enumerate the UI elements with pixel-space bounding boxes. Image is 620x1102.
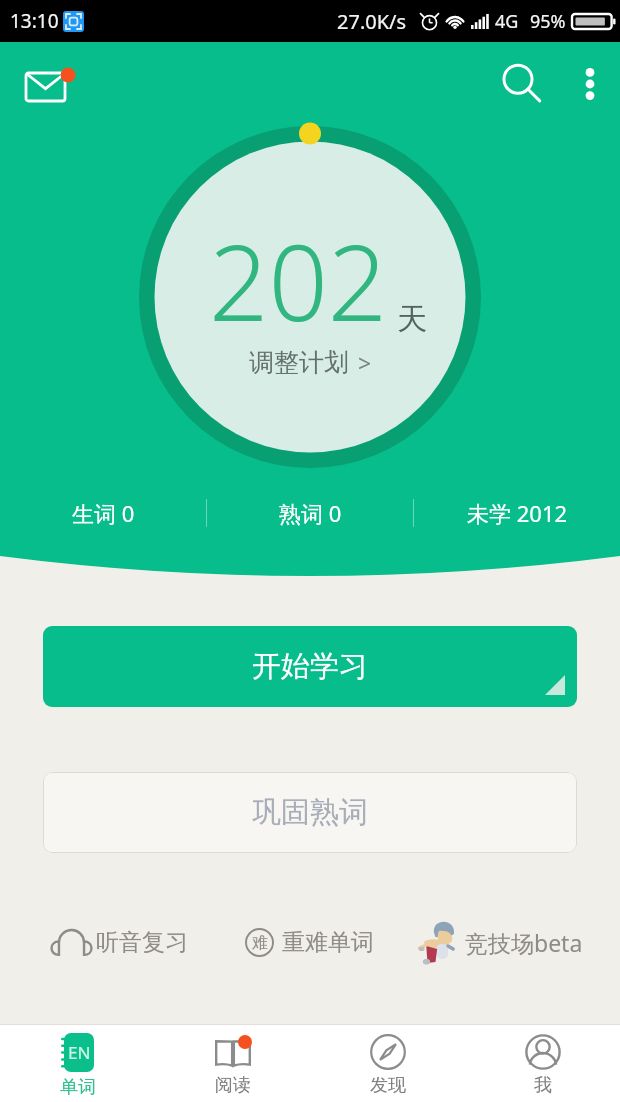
button[interactable]: 阅读 <box>155 1024 310 1102</box>
staticText: > <box>358 347 372 378</box>
button[interactable]: 未学 2012 <box>414 492 620 534</box>
staticText: 4G <box>495 9 519 34</box>
button[interactable]: 我 <box>465 1024 620 1102</box>
staticText: EN <box>68 1041 91 1064</box>
button[interactable]: 发现 <box>310 1024 465 1102</box>
staticText: 发现 <box>370 1074 406 1097</box>
staticText: 生词 0 <box>72 498 135 528</box>
staticText: 202 <box>209 210 388 352</box>
button[interactable]: Messages <box>18 56 74 112</box>
button[interactable]: More options <box>564 58 616 110</box>
button[interactable]: 巩固熟词 <box>43 772 577 853</box>
button[interactable]: 听音复习 <box>0 914 206 970</box>
button[interactable]: 开始学习 <box>43 626 577 707</box>
staticText: 竞技场beta <box>465 927 583 958</box>
staticText: 听音复习 <box>96 928 188 957</box>
staticText: 我 <box>534 1074 552 1097</box>
button[interactable]: 竞技场beta <box>413 914 620 970</box>
staticText: 重难单词 <box>282 928 374 957</box>
staticText: 阅读 <box>215 1074 251 1097</box>
staticText: 天 <box>397 300 427 338</box>
button[interactable]: 生词 0 <box>0 492 206 534</box>
staticText: 13:10 <box>10 8 59 34</box>
button[interactable]: Search <box>504 54 564 114</box>
button[interactable]: 熟词 0 <box>207 492 413 534</box>
staticText: 95% <box>530 9 566 34</box>
button[interactable]: 调整计划 <box>243 344 378 381</box>
button[interactable]: EN <box>0 1024 155 1102</box>
staticText: 开始学习 <box>252 648 368 685</box>
staticText: 27.0K/s <box>337 8 407 35</box>
button[interactable]: 难 <box>206 914 413 970</box>
staticText: 单词 <box>60 1076 96 1099</box>
staticText: 未学 2012 <box>467 498 568 528</box>
staticText: 调整计划 <box>249 347 349 378</box>
staticText: 难 <box>252 933 268 953</box>
staticText: 熟词 0 <box>279 498 342 528</box>
staticText: 巩固熟词 <box>252 794 368 831</box>
